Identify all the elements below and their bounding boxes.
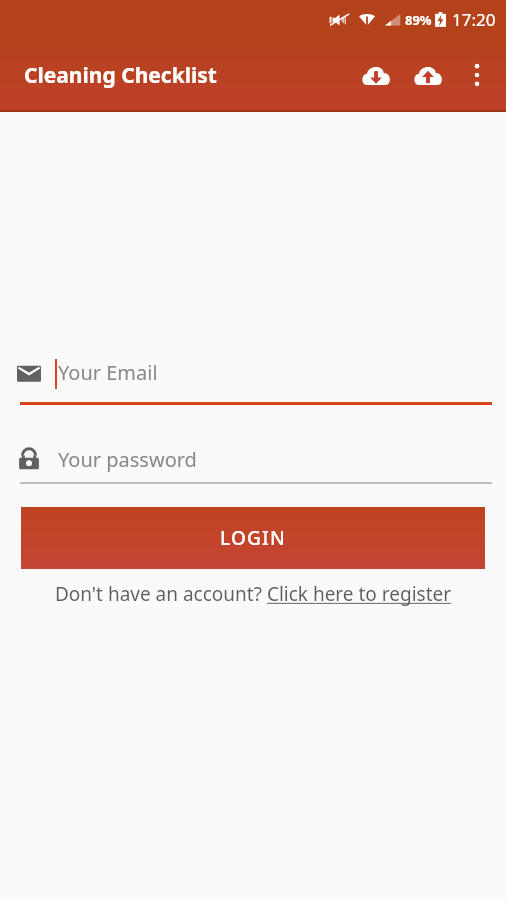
staticText: 17:20 <box>452 8 496 31</box>
button[interactable]: Your Email <box>0 359 506 405</box>
staticText: Don't have an account? Click here to reg… <box>24 581 482 607</box>
staticText: Your password <box>58 446 197 473</box>
button[interactable]: Your password <box>0 444 506 484</box>
button[interactable]: Upload <box>402 49 454 101</box>
button[interactable]: Download <box>350 49 402 101</box>
staticText: Cleaning Checklist <box>24 61 217 90</box>
button[interactable]: LOGIN <box>21 507 485 569</box>
button[interactable]: More options <box>454 52 500 98</box>
staticText: 89% <box>405 11 432 29</box>
staticText: LOGIN <box>220 525 286 551</box>
staticText: Your Email <box>58 359 158 386</box>
button[interactable]: Don't have an account? Click here to reg… <box>24 581 482 607</box>
